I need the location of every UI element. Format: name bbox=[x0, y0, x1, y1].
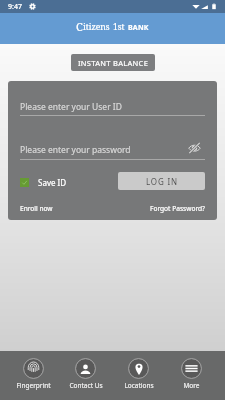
staticText: INSTANT BALANCE bbox=[78, 58, 149, 68]
staticText: Please enter your User ID bbox=[20, 101, 122, 113]
button[interactable]: More bbox=[165, 351, 218, 400]
button[interactable]: Contact Us bbox=[59, 351, 112, 400]
button[interactable]: INSTANT BALANCE bbox=[71, 54, 155, 71]
button[interactable]: Forgot Password? bbox=[150, 204, 205, 213]
staticText: Forgot Password? bbox=[150, 204, 205, 213]
staticText: C bbox=[76, 19, 83, 34]
button[interactable]: Enroll now bbox=[20, 204, 53, 213]
button[interactable]: Locations bbox=[112, 351, 165, 400]
button[interactable]: LOG IN bbox=[118, 172, 205, 190]
staticText: 9:47 bbox=[8, 2, 22, 12]
staticText: Please enter your password bbox=[20, 144, 131, 156]
staticText: Contact Us bbox=[69, 381, 103, 390]
staticText: Save ID bbox=[38, 177, 67, 188]
button[interactable]: Show password bbox=[187, 141, 205, 155]
staticText: Locations bbox=[124, 381, 154, 390]
button[interactable]: Save ID bbox=[20, 177, 67, 188]
staticText: Fingerprint bbox=[16, 381, 51, 390]
staticText: LOG IN bbox=[146, 176, 178, 187]
button[interactable]: Fingerprint bbox=[7, 351, 59, 400]
staticText: More bbox=[183, 381, 200, 390]
staticText: 1st bbox=[113, 21, 125, 33]
staticText: Enroll now bbox=[20, 204, 53, 213]
staticText: BANK bbox=[128, 23, 149, 33]
staticText: itizens bbox=[83, 21, 110, 33]
